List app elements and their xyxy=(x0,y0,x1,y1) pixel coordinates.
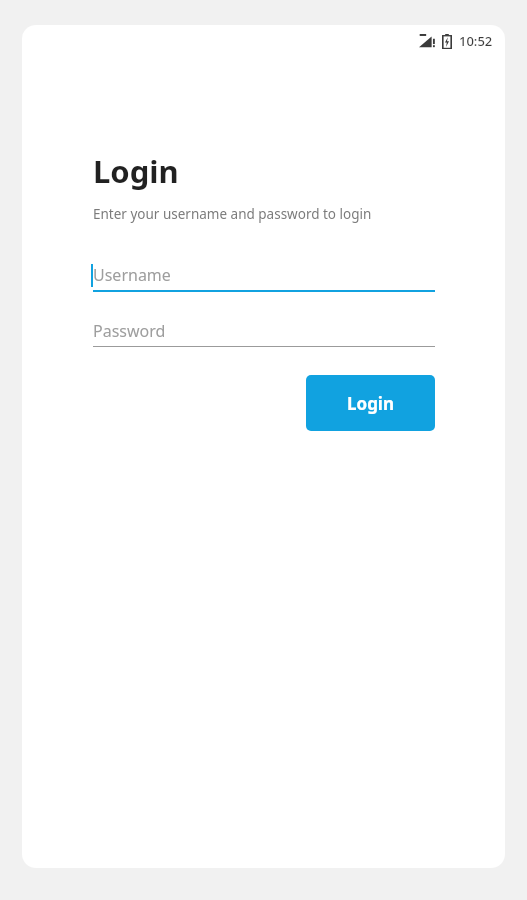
button[interactable]: Username xyxy=(93,260,435,292)
staticText: Username xyxy=(93,264,171,286)
staticText: Password xyxy=(93,320,166,342)
button[interactable]: Password xyxy=(93,316,435,347)
staticText: 10:52 xyxy=(459,32,493,50)
staticText: Login xyxy=(93,150,179,192)
staticText: Login xyxy=(347,392,395,415)
button[interactable]: Login xyxy=(306,375,435,431)
staticText: Enter your username and password to logi… xyxy=(93,205,372,223)
